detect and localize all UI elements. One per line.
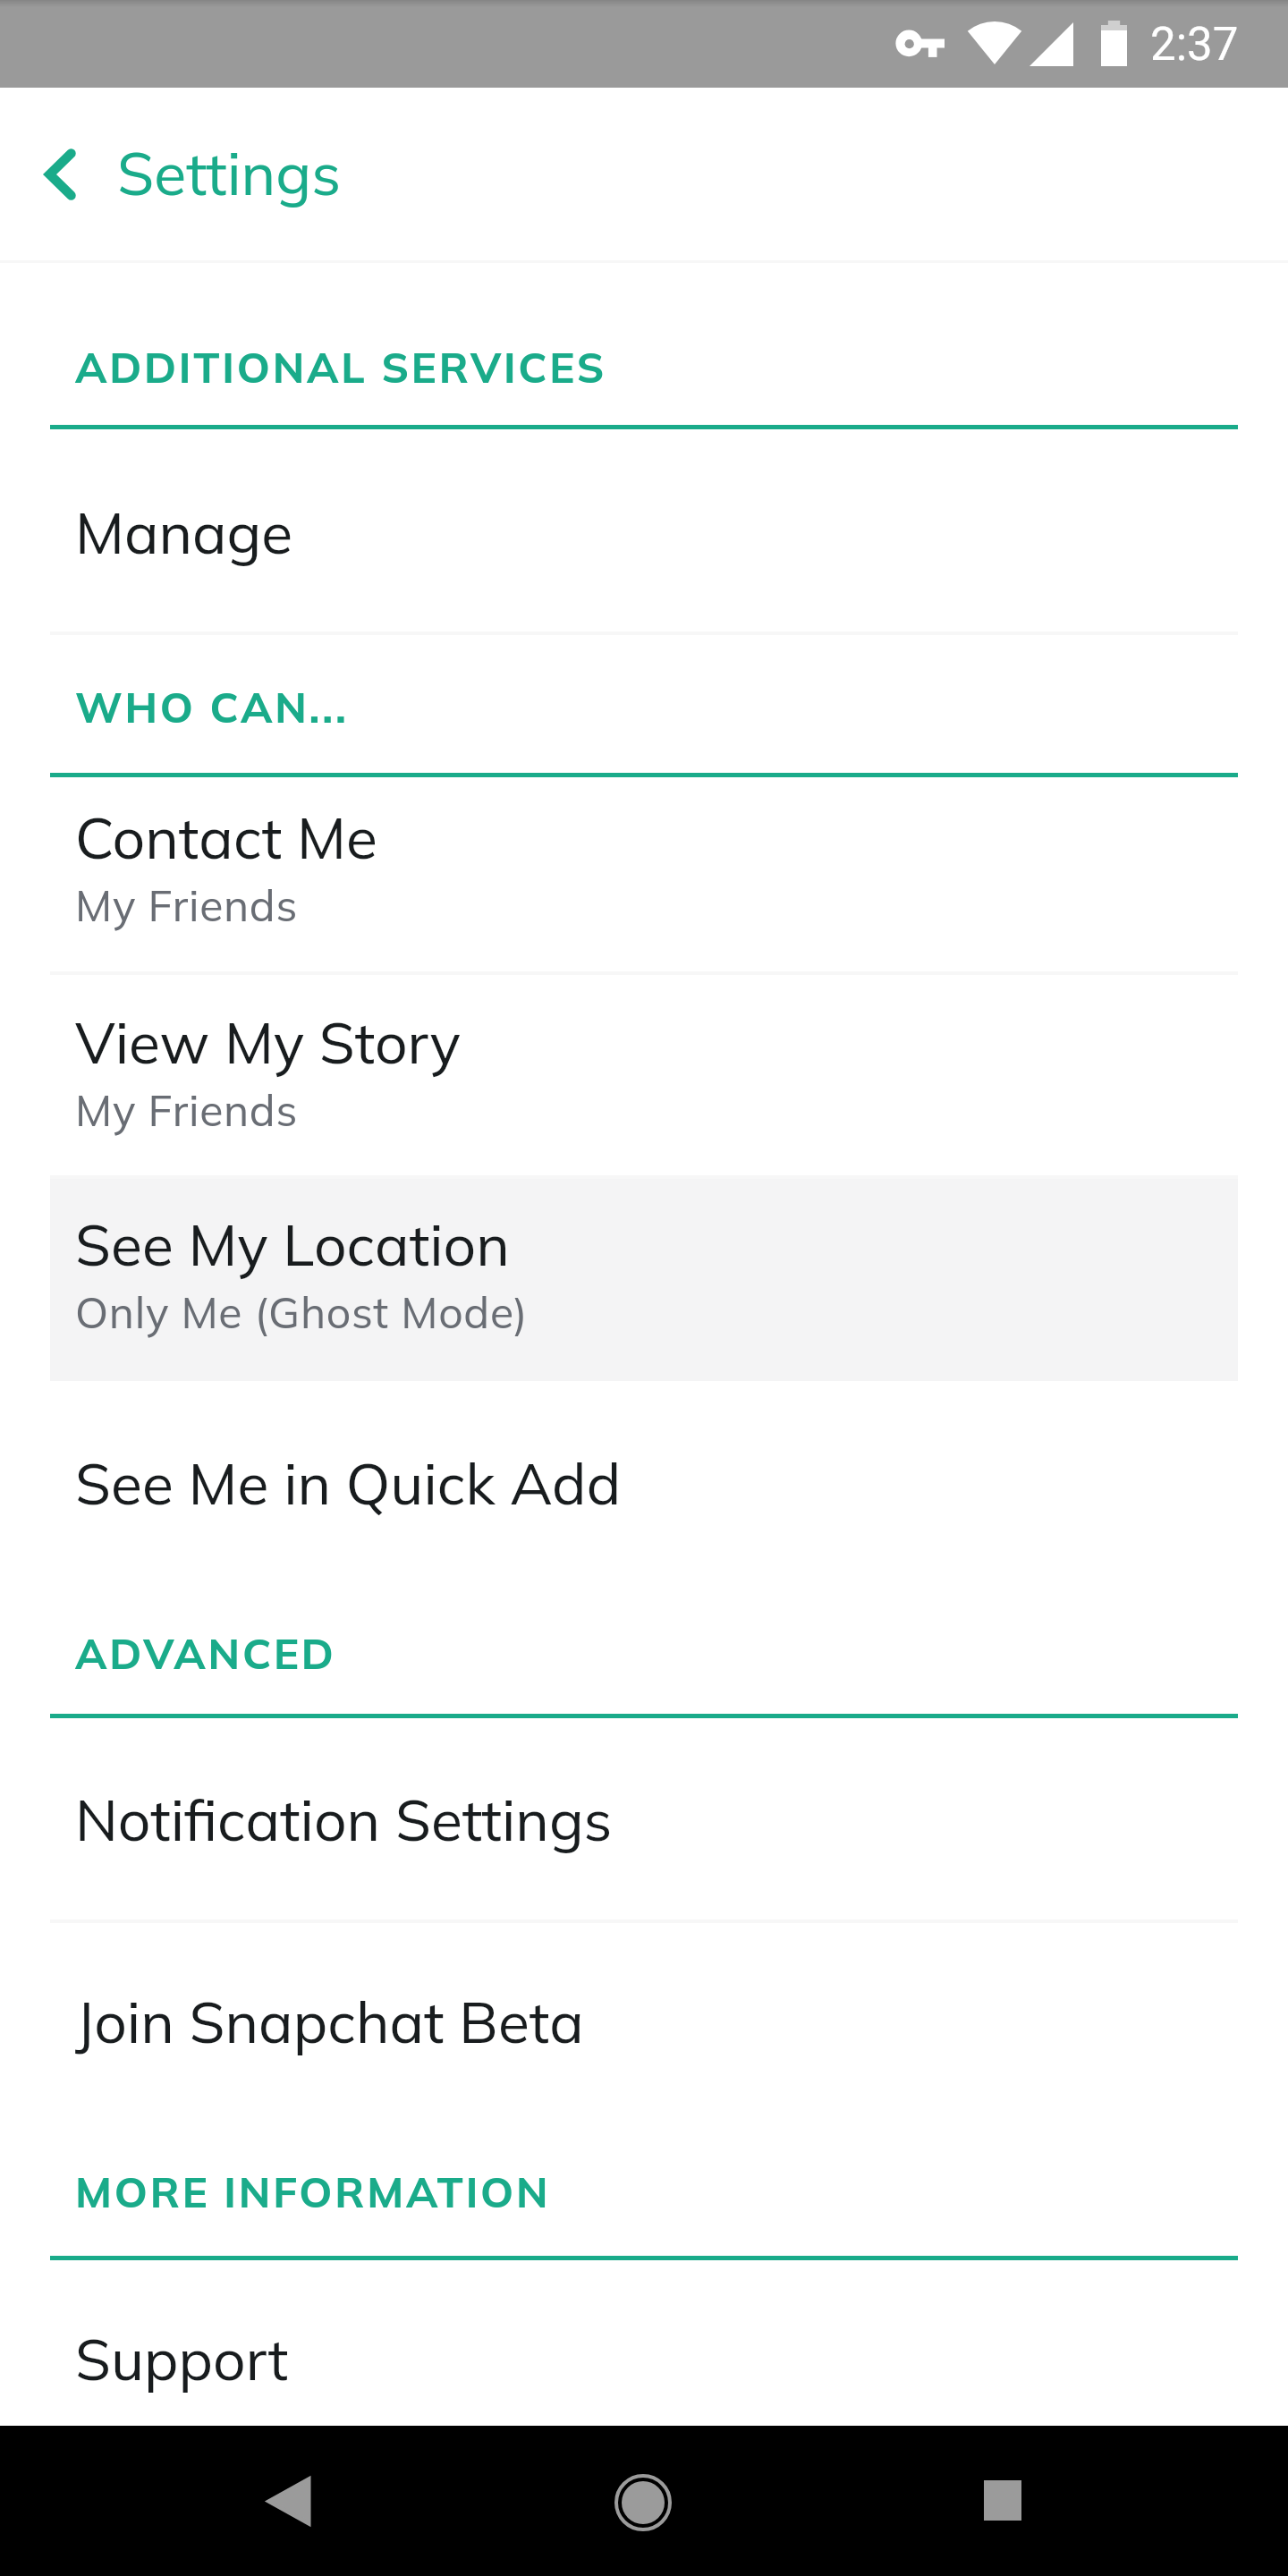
staticText: Manage <box>75 496 293 568</box>
button[interactable] <box>50 429 1238 631</box>
button[interactable] <box>50 1923 1238 2125</box>
button[interactable]: Home <box>536 2426 750 2576</box>
staticText: My Friends <box>75 1083 299 1137</box>
button[interactable] <box>50 1718 1238 1919</box>
button[interactable] <box>50 975 1238 1175</box>
button[interactable]: Back <box>7 95 123 254</box>
button[interactable] <box>50 1179 1238 1381</box>
button[interactable]: Recent apps <box>895 2426 1110 2576</box>
staticText: MORE INFORMATION <box>75 2165 551 2218</box>
staticText: Only Me (Ghost Mode) <box>75 1285 529 1339</box>
staticText: My Friends <box>75 878 299 932</box>
staticText: Join Snapchat Beta <box>75 1986 584 2057</box>
staticText: ADVANCED <box>75 1627 336 1680</box>
button[interactable] <box>50 2260 1238 2426</box>
staticText: Support <box>75 2323 289 2394</box>
staticText: See Me in Quick Add <box>75 1447 622 1519</box>
staticText: View My Story <box>75 1006 461 1078</box>
button[interactable] <box>50 1383 1238 1585</box>
button[interactable]: Back <box>182 2426 396 2576</box>
button[interactable] <box>50 777 1238 971</box>
staticText: 2:37 <box>1150 18 1239 72</box>
staticText: Notification Settings <box>75 1784 613 1855</box>
staticText: Settings <box>117 136 342 210</box>
staticText: WHO CAN... <box>75 681 349 733</box>
staticText: Contact Me <box>75 801 377 873</box>
staticText: See My Location <box>75 1208 510 1280</box>
staticText: ADDITIONAL SERVICES <box>75 341 607 394</box>
